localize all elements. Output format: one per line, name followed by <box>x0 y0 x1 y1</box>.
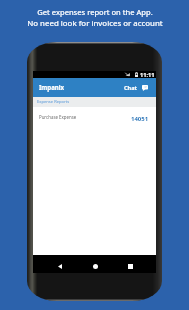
staticText: Purchase Expense <box>39 114 77 120</box>
other: Chat <box>142 85 148 91</box>
button[interactable]: Purchase Expense <box>33 107 156 126</box>
staticText: Impanix <box>39 83 65 91</box>
button[interactable]: Chat <box>124 84 148 92</box>
button[interactable]: Recents <box>124 260 136 272</box>
staticText: No need look for invoices or account <box>27 18 163 29</box>
staticText: Get expenses report on the App. <box>37 7 153 17</box>
button[interactable]: Home <box>89 260 101 272</box>
button[interactable]: Expense Reports <box>33 97 156 107</box>
staticText: 14051 <box>131 115 149 123</box>
staticText: Expense Reports <box>37 99 70 105</box>
staticText: Chat <box>124 84 138 92</box>
button[interactable]: Back <box>54 260 66 272</box>
button[interactable]: Impanix <box>39 83 65 91</box>
staticText: 11:11 <box>140 71 155 78</box>
